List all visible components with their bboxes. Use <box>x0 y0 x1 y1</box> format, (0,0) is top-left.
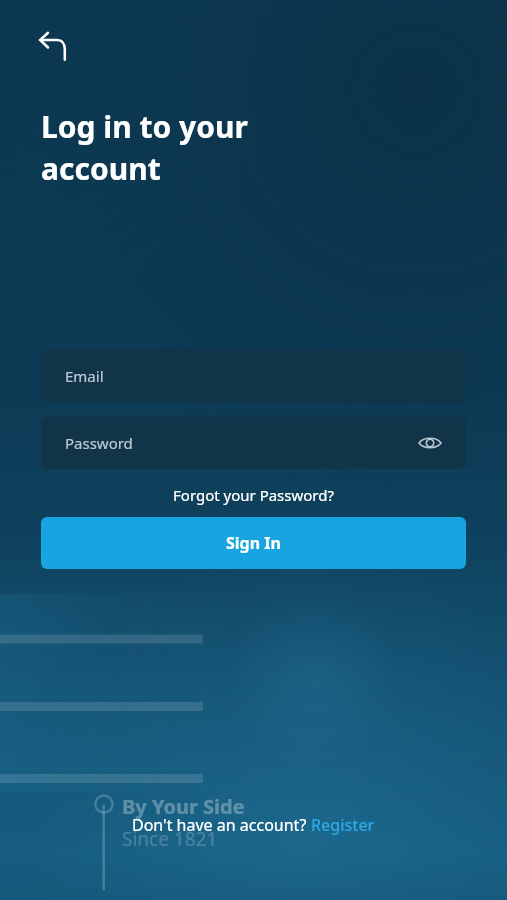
staticText: Forgot your Password? <box>173 485 334 505</box>
button[interactable]: Password <box>41 417 466 469</box>
staticText: Password <box>65 433 133 453</box>
staticText: Log in to your account <box>41 106 248 189</box>
staticText: By Your Side <box>122 793 245 820</box>
staticText: Email <box>65 366 104 386</box>
button[interactable]: Back <box>30 22 78 70</box>
button[interactable]: Email <box>41 350 466 402</box>
staticText: Since 1821 <box>122 826 218 852</box>
button[interactable]: Forgot your Password? <box>163 482 344 508</box>
button[interactable]: Sign In <box>41 517 466 569</box>
button[interactable]: Show password <box>414 427 446 459</box>
button[interactable]: Don't have an account? <box>124 812 383 838</box>
staticText: Sign In <box>226 532 281 554</box>
staticText: Don't have an account? <box>132 814 311 836</box>
staticText: Register <box>311 814 375 836</box>
